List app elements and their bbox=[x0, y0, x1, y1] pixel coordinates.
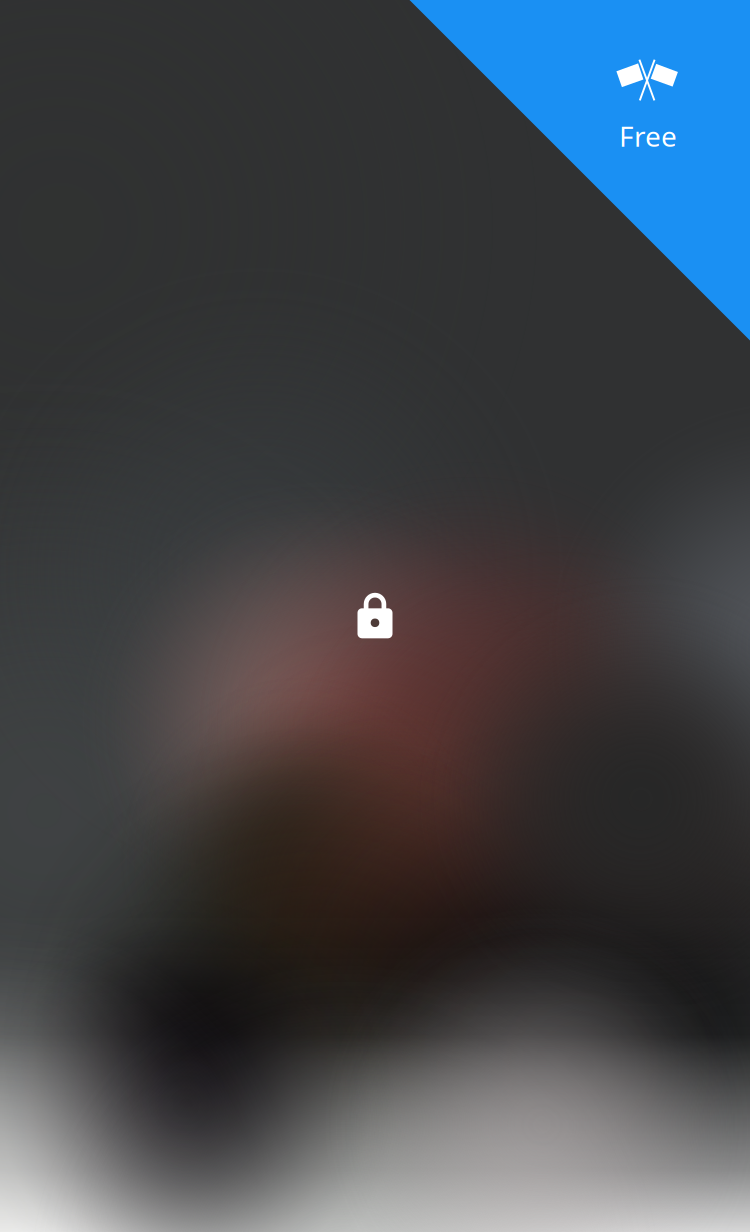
button[interactable]: Free bbox=[0, 0, 750, 1232]
staticText: Free bbox=[619, 117, 677, 155]
